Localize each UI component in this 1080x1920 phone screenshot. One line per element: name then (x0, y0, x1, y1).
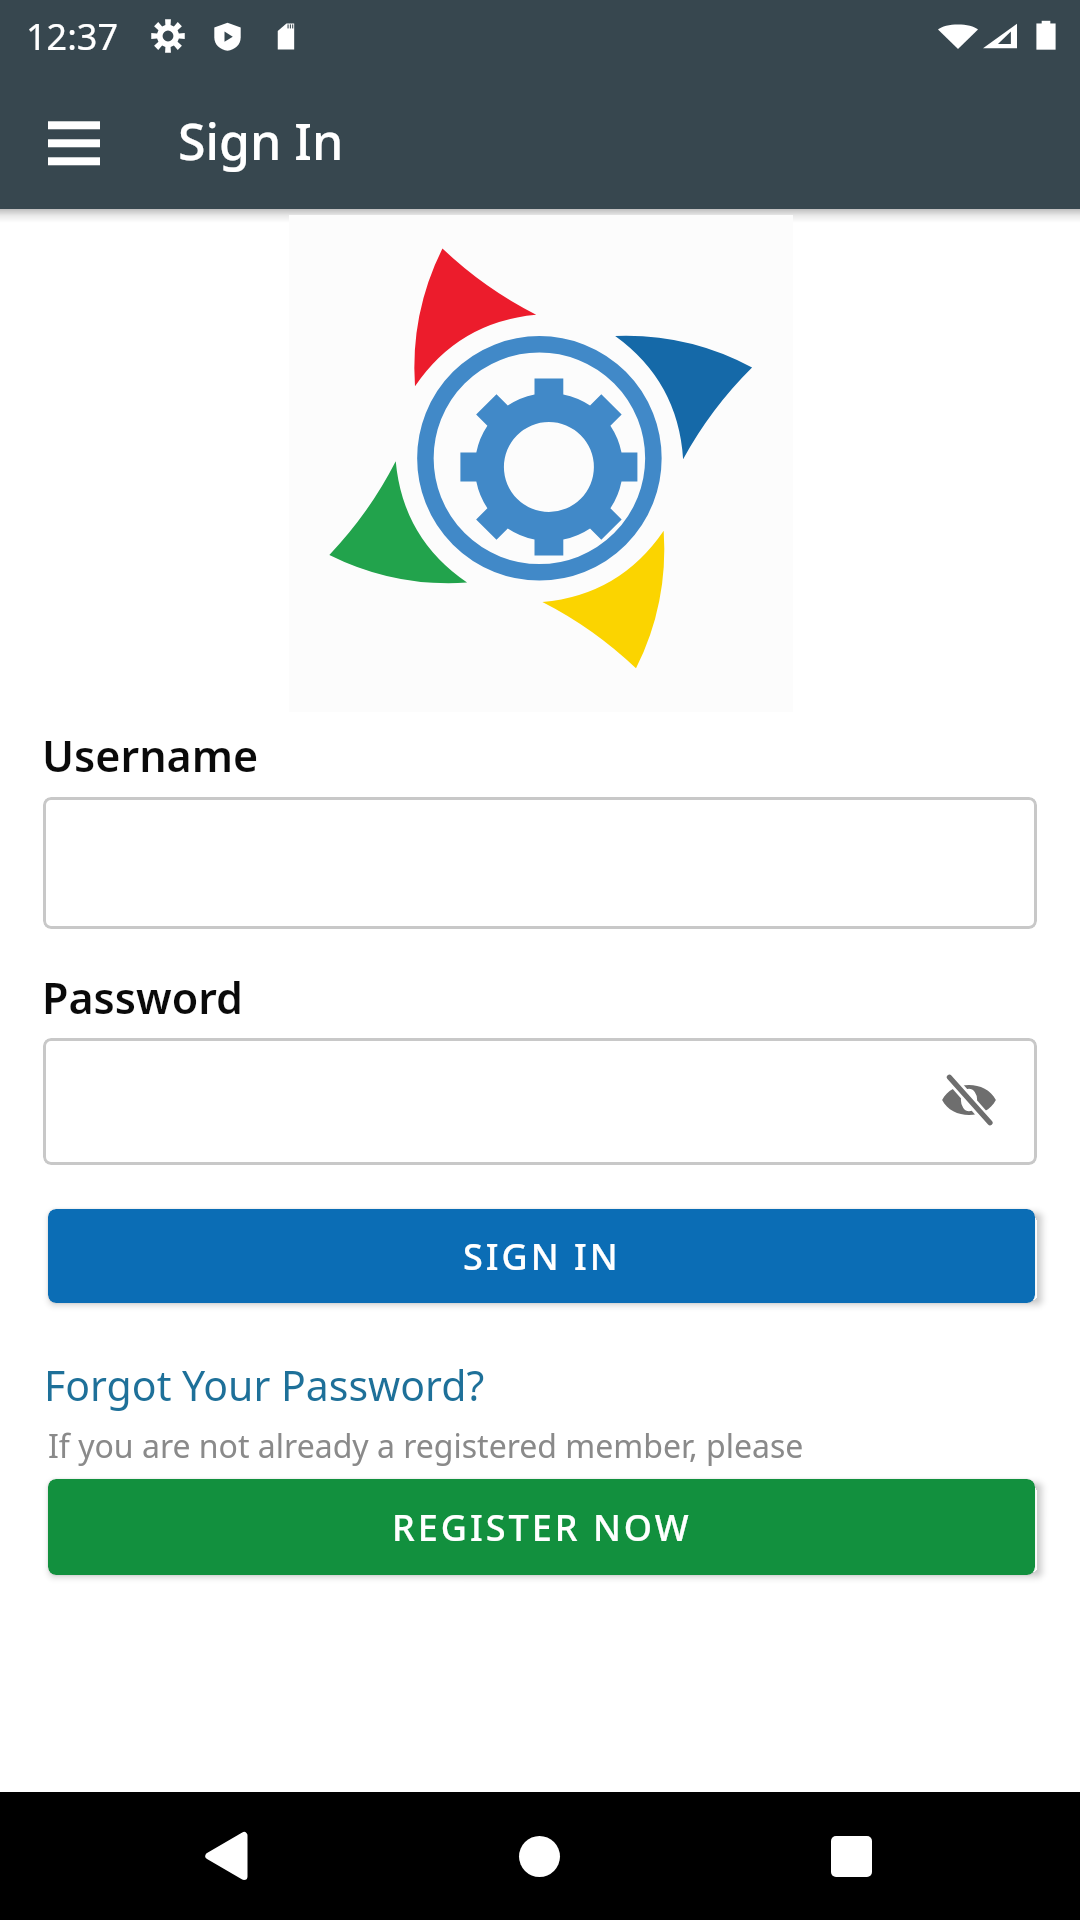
button[interactable]: Back (171, 1801, 281, 1911)
button[interactable]: Open navigation menu (26, 93, 122, 189)
staticText: SIGN IN (463, 1232, 621, 1281)
button[interactable]: Recents (796, 1801, 906, 1911)
button[interactable]: Forgot Your Password? (44, 1357, 485, 1413)
button[interactable]: SIGN IN (48, 1209, 1035, 1303)
staticText: REGISTER NOW (392, 1503, 692, 1552)
staticText: 12:37 (26, 12, 119, 61)
button[interactable]: Username input field (43, 797, 1037, 929)
button[interactable]: Password input field (43, 1038, 1037, 1165)
button[interactable]: Home (484, 1801, 594, 1911)
staticText: If you are not already a registered memb… (48, 1424, 804, 1468)
button[interactable]: REGISTER NOW (48, 1479, 1035, 1575)
staticText: Username (42, 726, 259, 785)
staticText: Password (42, 968, 243, 1027)
button[interactable]: Show password (931, 1062, 1007, 1138)
staticText: Sign In (178, 107, 344, 175)
